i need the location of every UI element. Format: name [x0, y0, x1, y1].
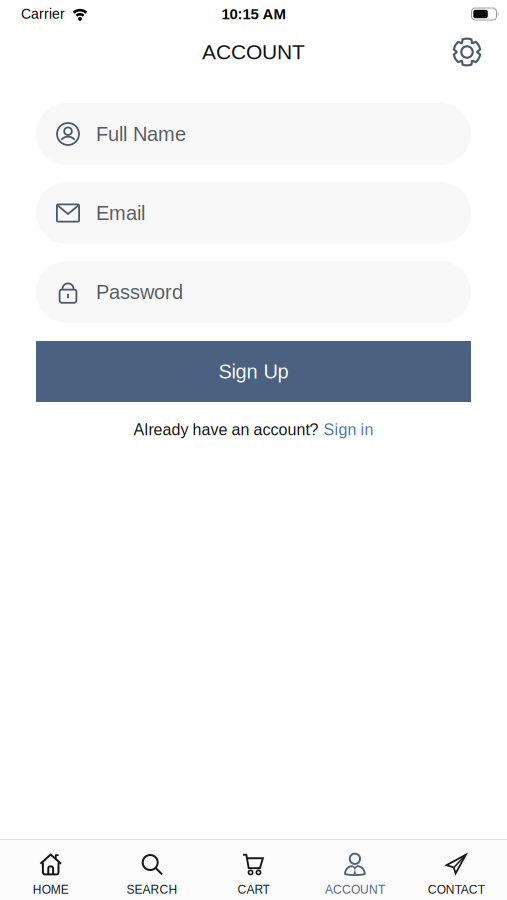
staticText: Full Name: [96, 123, 186, 145]
staticText: CONTACT: [428, 883, 485, 896]
staticText: Carrier: [21, 6, 65, 22]
staticText: Already have an account?: [133, 421, 318, 438]
button[interactable]: CONTACT: [406, 852, 507, 896]
button[interactable]: Full Name: [36, 103, 471, 165]
button[interactable]: Email: [36, 182, 471, 244]
button[interactable]: Sign in: [323, 421, 373, 438]
button[interactable]: SEARCH: [101, 852, 203, 896]
staticText: Sign Up: [218, 361, 288, 382]
button[interactable]: Password: [36, 261, 471, 323]
staticText: HOME: [33, 883, 69, 896]
button[interactable]: [452, 37, 482, 67]
staticText: ACCOUNT: [202, 41, 305, 63]
button[interactable]: Sign Up: [36, 341, 471, 402]
staticText: 10:15 AM: [221, 6, 285, 22]
staticText: Password: [96, 281, 183, 303]
button[interactable]: CART: [203, 852, 304, 896]
button[interactable]: ACCOUNT: [304, 852, 406, 896]
staticText: SEARCH: [127, 883, 178, 896]
button[interactable]: HOME: [0, 852, 101, 896]
staticText: Email: [96, 202, 145, 224]
staticText: Sign in: [323, 421, 373, 438]
staticText: CART: [237, 883, 269, 896]
staticText: ACCOUNT: [325, 883, 385, 896]
